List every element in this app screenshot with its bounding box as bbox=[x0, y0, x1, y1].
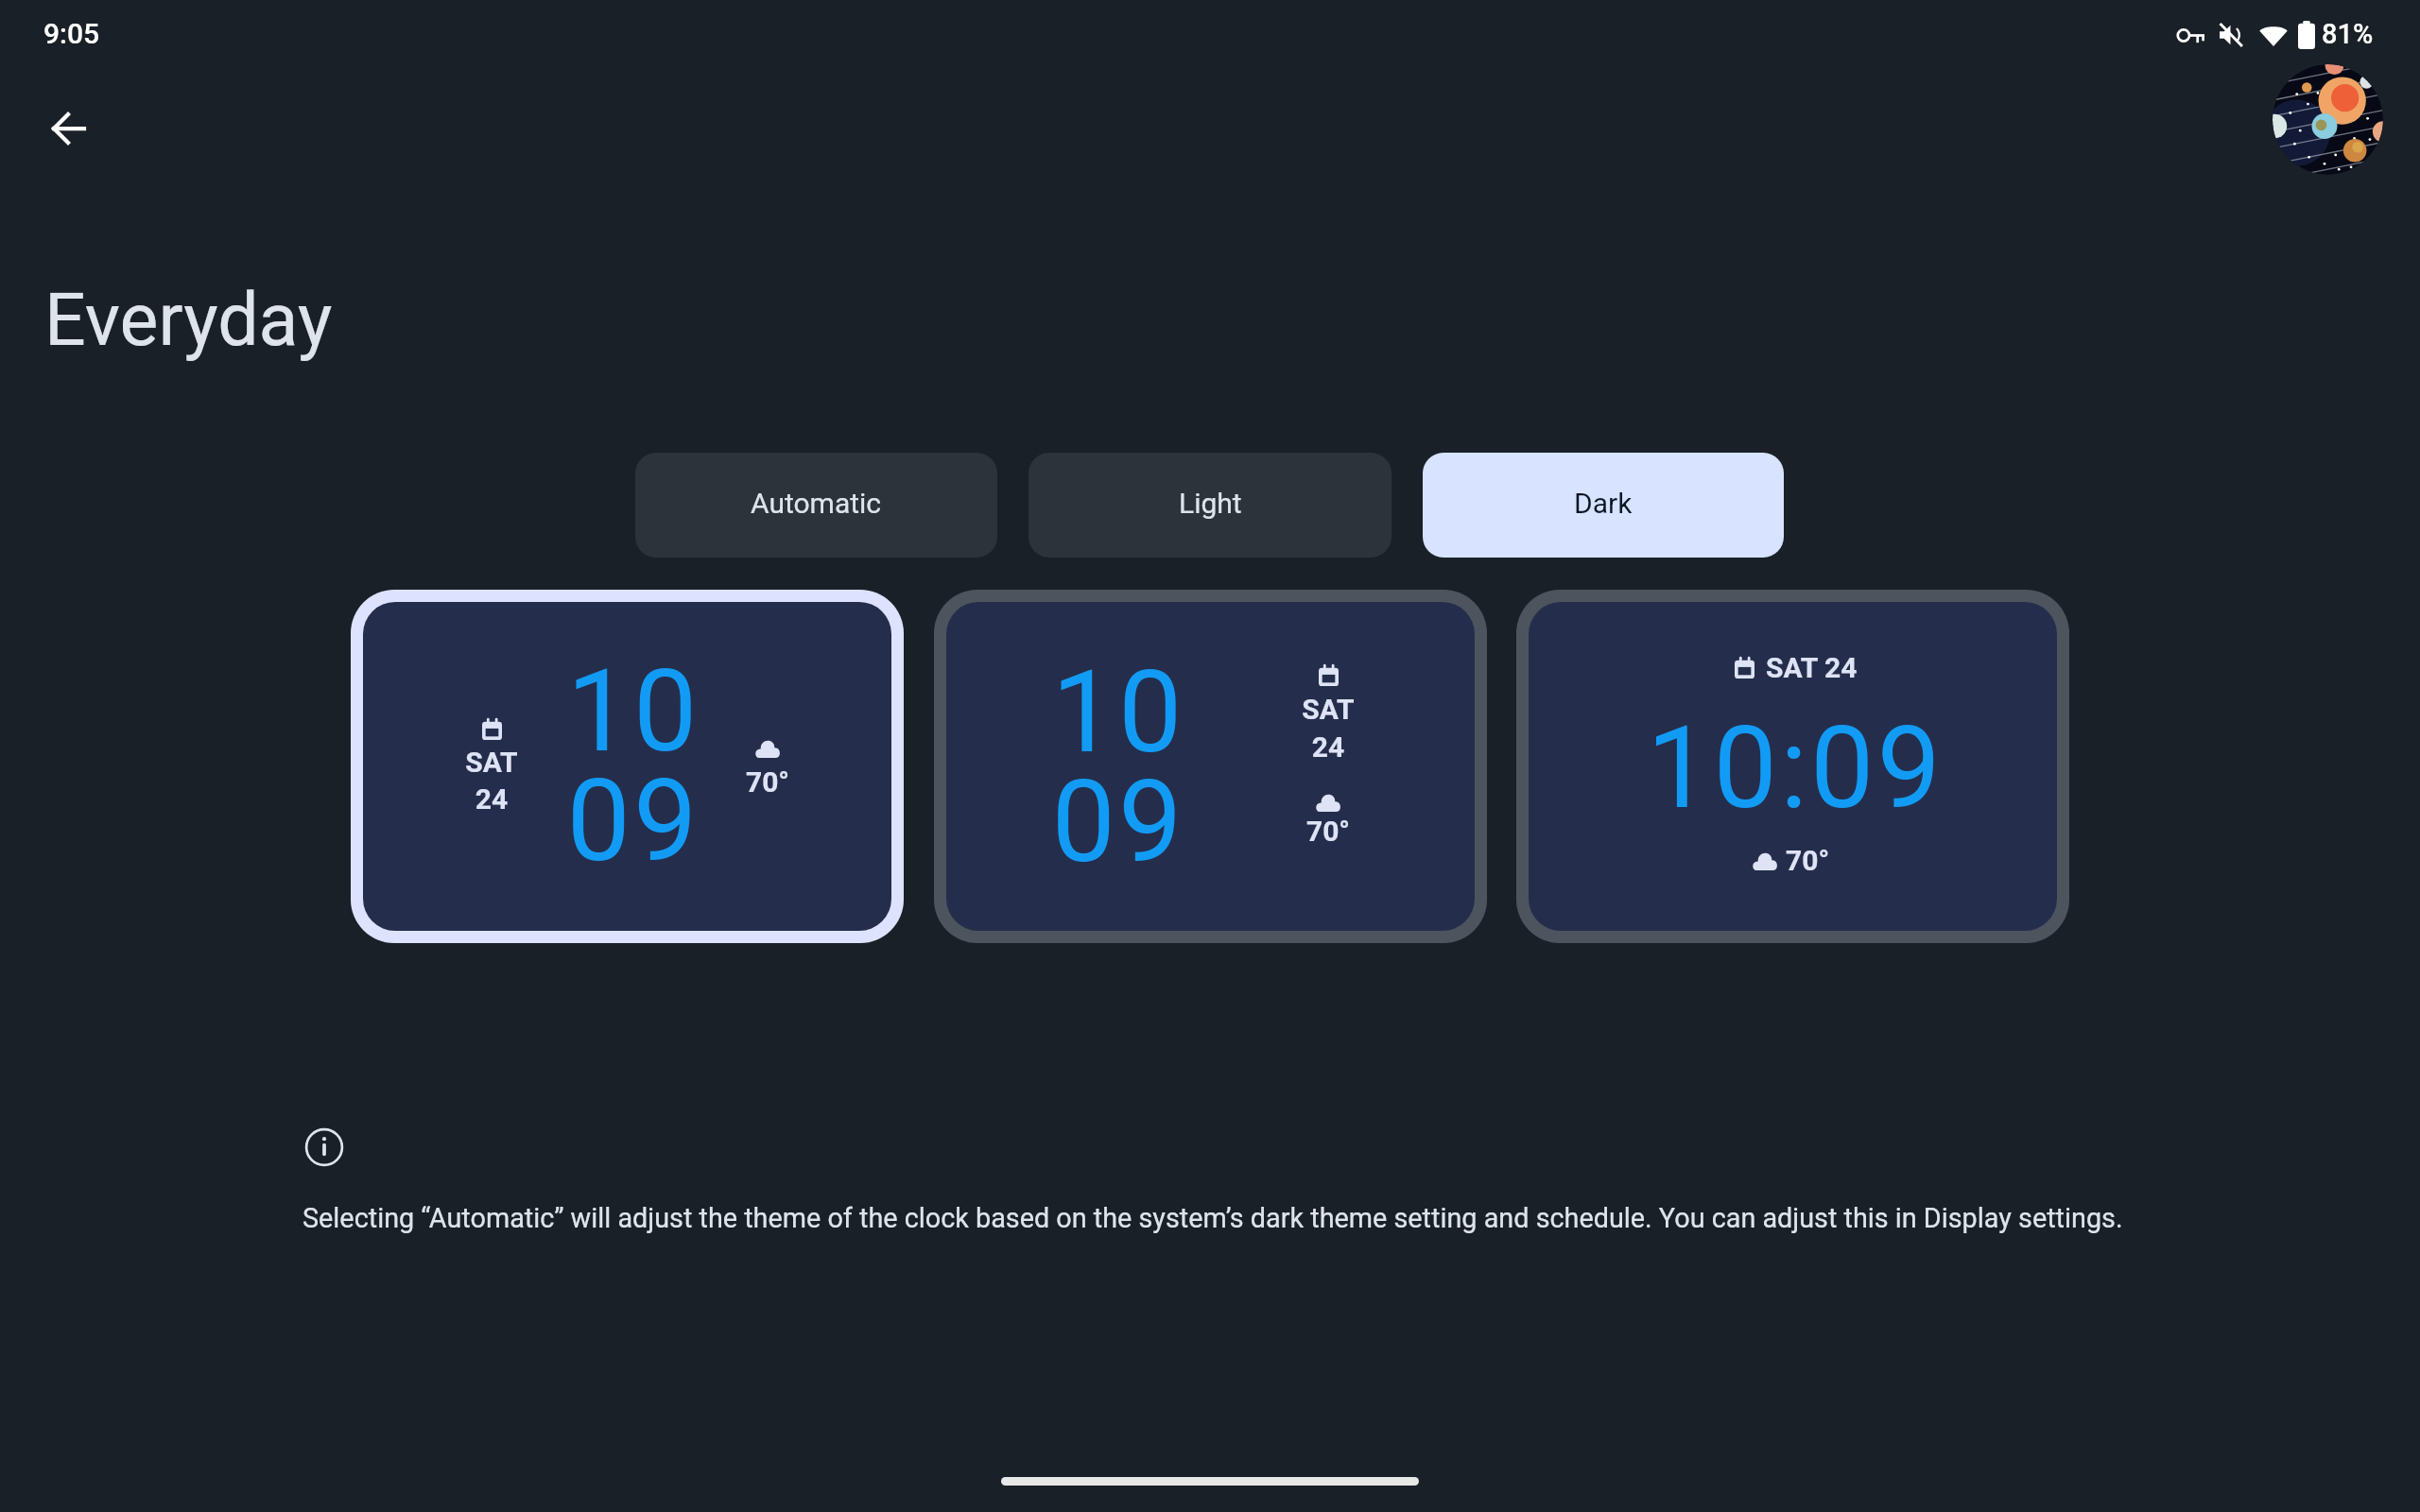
button[interactable]: SAT 24 bbox=[1516, 590, 2069, 943]
staticText: 09 bbox=[444, 755, 822, 888]
button[interactable]: 10 bbox=[934, 590, 1487, 943]
staticText: SAT 24 bbox=[1766, 651, 1858, 684]
staticText: 81% bbox=[2322, 18, 2374, 50]
staticText: SAT bbox=[397, 746, 586, 779]
button[interactable]: Dark bbox=[1423, 453, 1784, 558]
staticText: Dark bbox=[1574, 487, 1633, 520]
staticText: 09 bbox=[946, 756, 1307, 889]
staticText: 10 bbox=[946, 646, 1307, 780]
staticText: Everyday bbox=[44, 278, 333, 363]
button[interactable]: Account bbox=[2273, 64, 2383, 175]
staticText: 10 bbox=[444, 645, 822, 779]
staticText: 24 bbox=[1234, 730, 1423, 764]
staticText: 70° bbox=[673, 765, 862, 799]
button[interactable]: Back bbox=[26, 87, 110, 170]
button[interactable]: Automatic bbox=[635, 453, 997, 558]
staticText: 24 bbox=[397, 782, 586, 816]
staticText: 10:09 bbox=[1606, 702, 1984, 835]
staticText: Light bbox=[1179, 487, 1242, 520]
staticText: 70° bbox=[1786, 844, 1830, 877]
button[interactable]: Light bbox=[1028, 453, 1391, 558]
staticText: 70° bbox=[1234, 815, 1423, 848]
staticText: 9:05 bbox=[43, 17, 100, 50]
button[interactable]: SAT bbox=[351, 590, 904, 943]
staticText: Selecting “Automatic” will adjust the th… bbox=[302, 1202, 2123, 1234]
staticText: Automatic bbox=[751, 487, 882, 520]
staticText: SAT bbox=[1234, 693, 1423, 726]
